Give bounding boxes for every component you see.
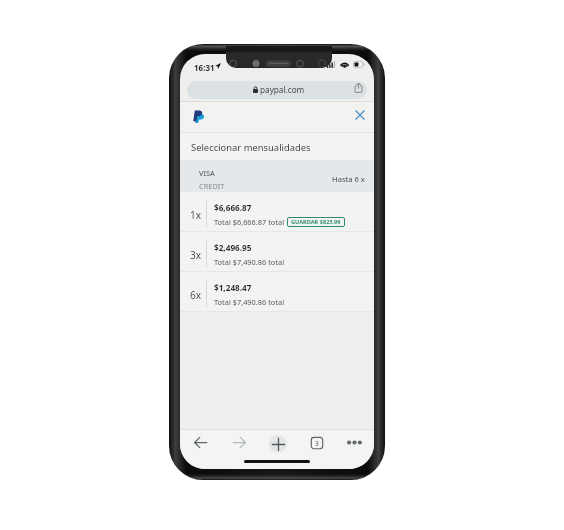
staticText: VISA (199, 168, 215, 178)
button[interactable]: 3x (180, 232, 374, 272)
staticText: 6x (190, 288, 202, 302)
button[interactable]: Share (353, 82, 364, 93)
button[interactable]: Tabs (310, 436, 324, 450)
button[interactable]: More (347, 435, 362, 450)
button[interactable]: 6x (180, 272, 374, 312)
button[interactable]: Close (353, 108, 367, 122)
button[interactable]: Forward (232, 435, 247, 450)
staticText: Total $7,490.86 total (214, 297, 285, 307)
button[interactable]: paypal.com (187, 81, 367, 99)
staticText: Total $7,490.86 total (214, 257, 285, 267)
staticText: 16:31 (194, 62, 215, 73)
staticText: 1x (190, 208, 202, 222)
staticText: Seleccionar mensualidades (191, 141, 311, 154)
staticText: GUARDAR $823.99 (291, 218, 341, 226)
button[interactable]: Back (193, 435, 208, 450)
staticText: $2,496.95 (214, 242, 252, 253)
button[interactable]: 1x (180, 192, 374, 232)
staticText: CREDIT (199, 181, 225, 191)
staticText: 3 (315, 439, 319, 448)
staticText: paypal.com (260, 84, 305, 95)
staticText: $6,666.87 (214, 202, 252, 213)
staticText: 3x (190, 248, 202, 262)
button[interactable]: New tab (269, 435, 287, 453)
staticText: $1,248.47 (214, 282, 252, 293)
staticText: Total $6,666.87 total (214, 217, 285, 227)
staticText: Hasta 6 x (332, 174, 365, 184)
